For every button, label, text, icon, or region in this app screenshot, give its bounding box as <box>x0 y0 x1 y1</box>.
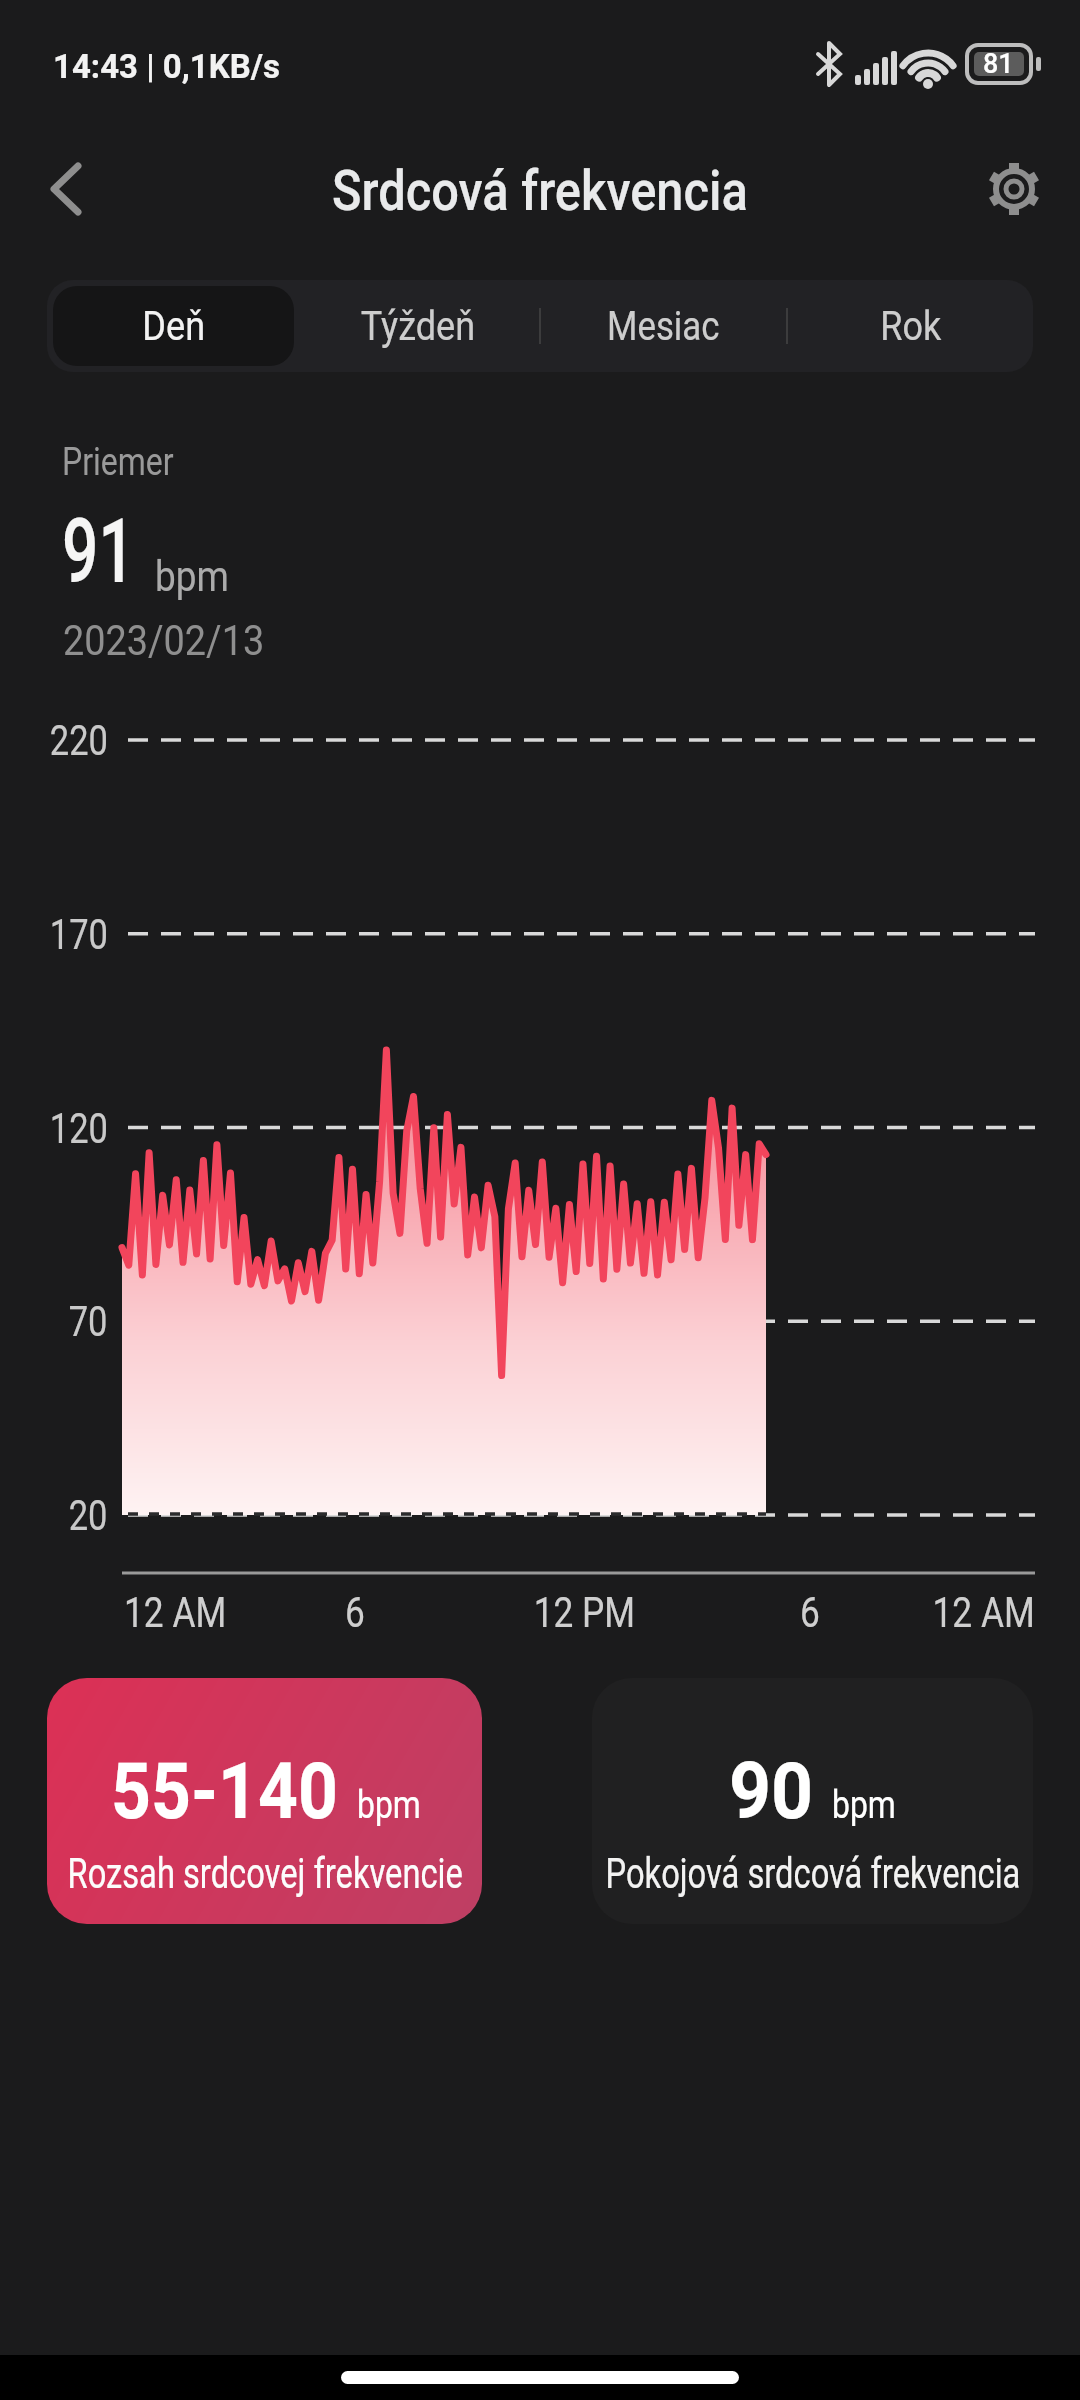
staticText: 120 <box>50 1104 108 1153</box>
staticText: Rozsah srdcovej frekvencie <box>67 1848 463 1898</box>
button[interactable] <box>974 150 1054 230</box>
staticText: 2023/02/13 <box>63 616 265 665</box>
staticText: 55-140 <box>111 1746 339 1837</box>
button[interactable]: 55-140 <box>47 1678 482 1924</box>
staticText: 90 <box>729 1746 814 1837</box>
staticText: 12 AM <box>932 1588 1035 1637</box>
staticText: Deň <box>142 302 206 350</box>
staticText: 91 <box>62 499 135 603</box>
staticText: bpm <box>832 1783 896 1828</box>
staticText: 20 <box>69 1491 108 1540</box>
staticText: 6 <box>800 1588 820 1637</box>
staticText: 12 AM <box>124 1588 226 1637</box>
staticText: 12 PM <box>534 1588 635 1637</box>
staticText: Srdcová frekvencia <box>332 158 748 224</box>
staticText: 6 <box>345 1588 365 1637</box>
button[interactable]: Mesiac <box>540 280 787 372</box>
button[interactable]: Rok <box>787 280 1033 372</box>
staticText: Rok <box>880 302 942 350</box>
staticText: 14:43 | 0,1KB/s <box>53 46 281 86</box>
button[interactable]: Týždeň <box>294 280 541 372</box>
staticText: Pokojová srdcová frekvencia <box>605 1848 1020 1898</box>
staticText: bpm <box>155 552 229 601</box>
staticText: 220 <box>50 716 108 765</box>
button[interactable]: 90 <box>592 1678 1033 1924</box>
button[interactable]: Deň <box>53 286 294 366</box>
staticText: Mesiac <box>607 302 720 350</box>
staticText: Týždeň <box>361 302 475 350</box>
staticText: 81 <box>983 48 1014 80</box>
staticText: bpm <box>357 1783 421 1828</box>
staticText: 70 <box>69 1297 108 1346</box>
staticText: Priemer <box>62 439 174 485</box>
staticText: 170 <box>50 910 108 959</box>
button[interactable] <box>30 150 110 230</box>
